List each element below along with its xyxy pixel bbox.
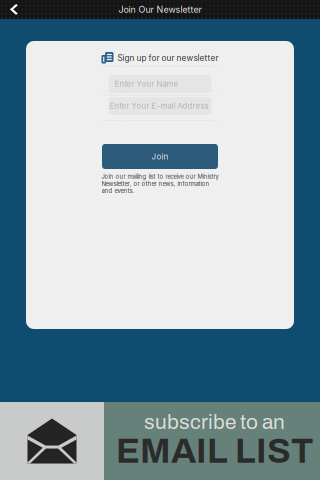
staticText: Enter Your Name: [114, 79, 178, 89]
staticText: Join Our Newsletter: [118, 4, 201, 15]
staticText: Enter Your E-mail Address: [109, 101, 208, 111]
staticText: Join: [151, 152, 168, 161]
button[interactable]: subscribe to an: [0, 402, 320, 480]
staticText: subscribe to an: [144, 411, 285, 433]
button[interactable]: Join: [102, 144, 218, 169]
staticText: EMAIL LIST: [116, 432, 313, 470]
button[interactable]: Back: [0, 0, 28, 19]
staticText: Join our mailing list to receive our Min…: [101, 173, 218, 194]
staticText: Sign up for our newsletter: [117, 53, 218, 63]
